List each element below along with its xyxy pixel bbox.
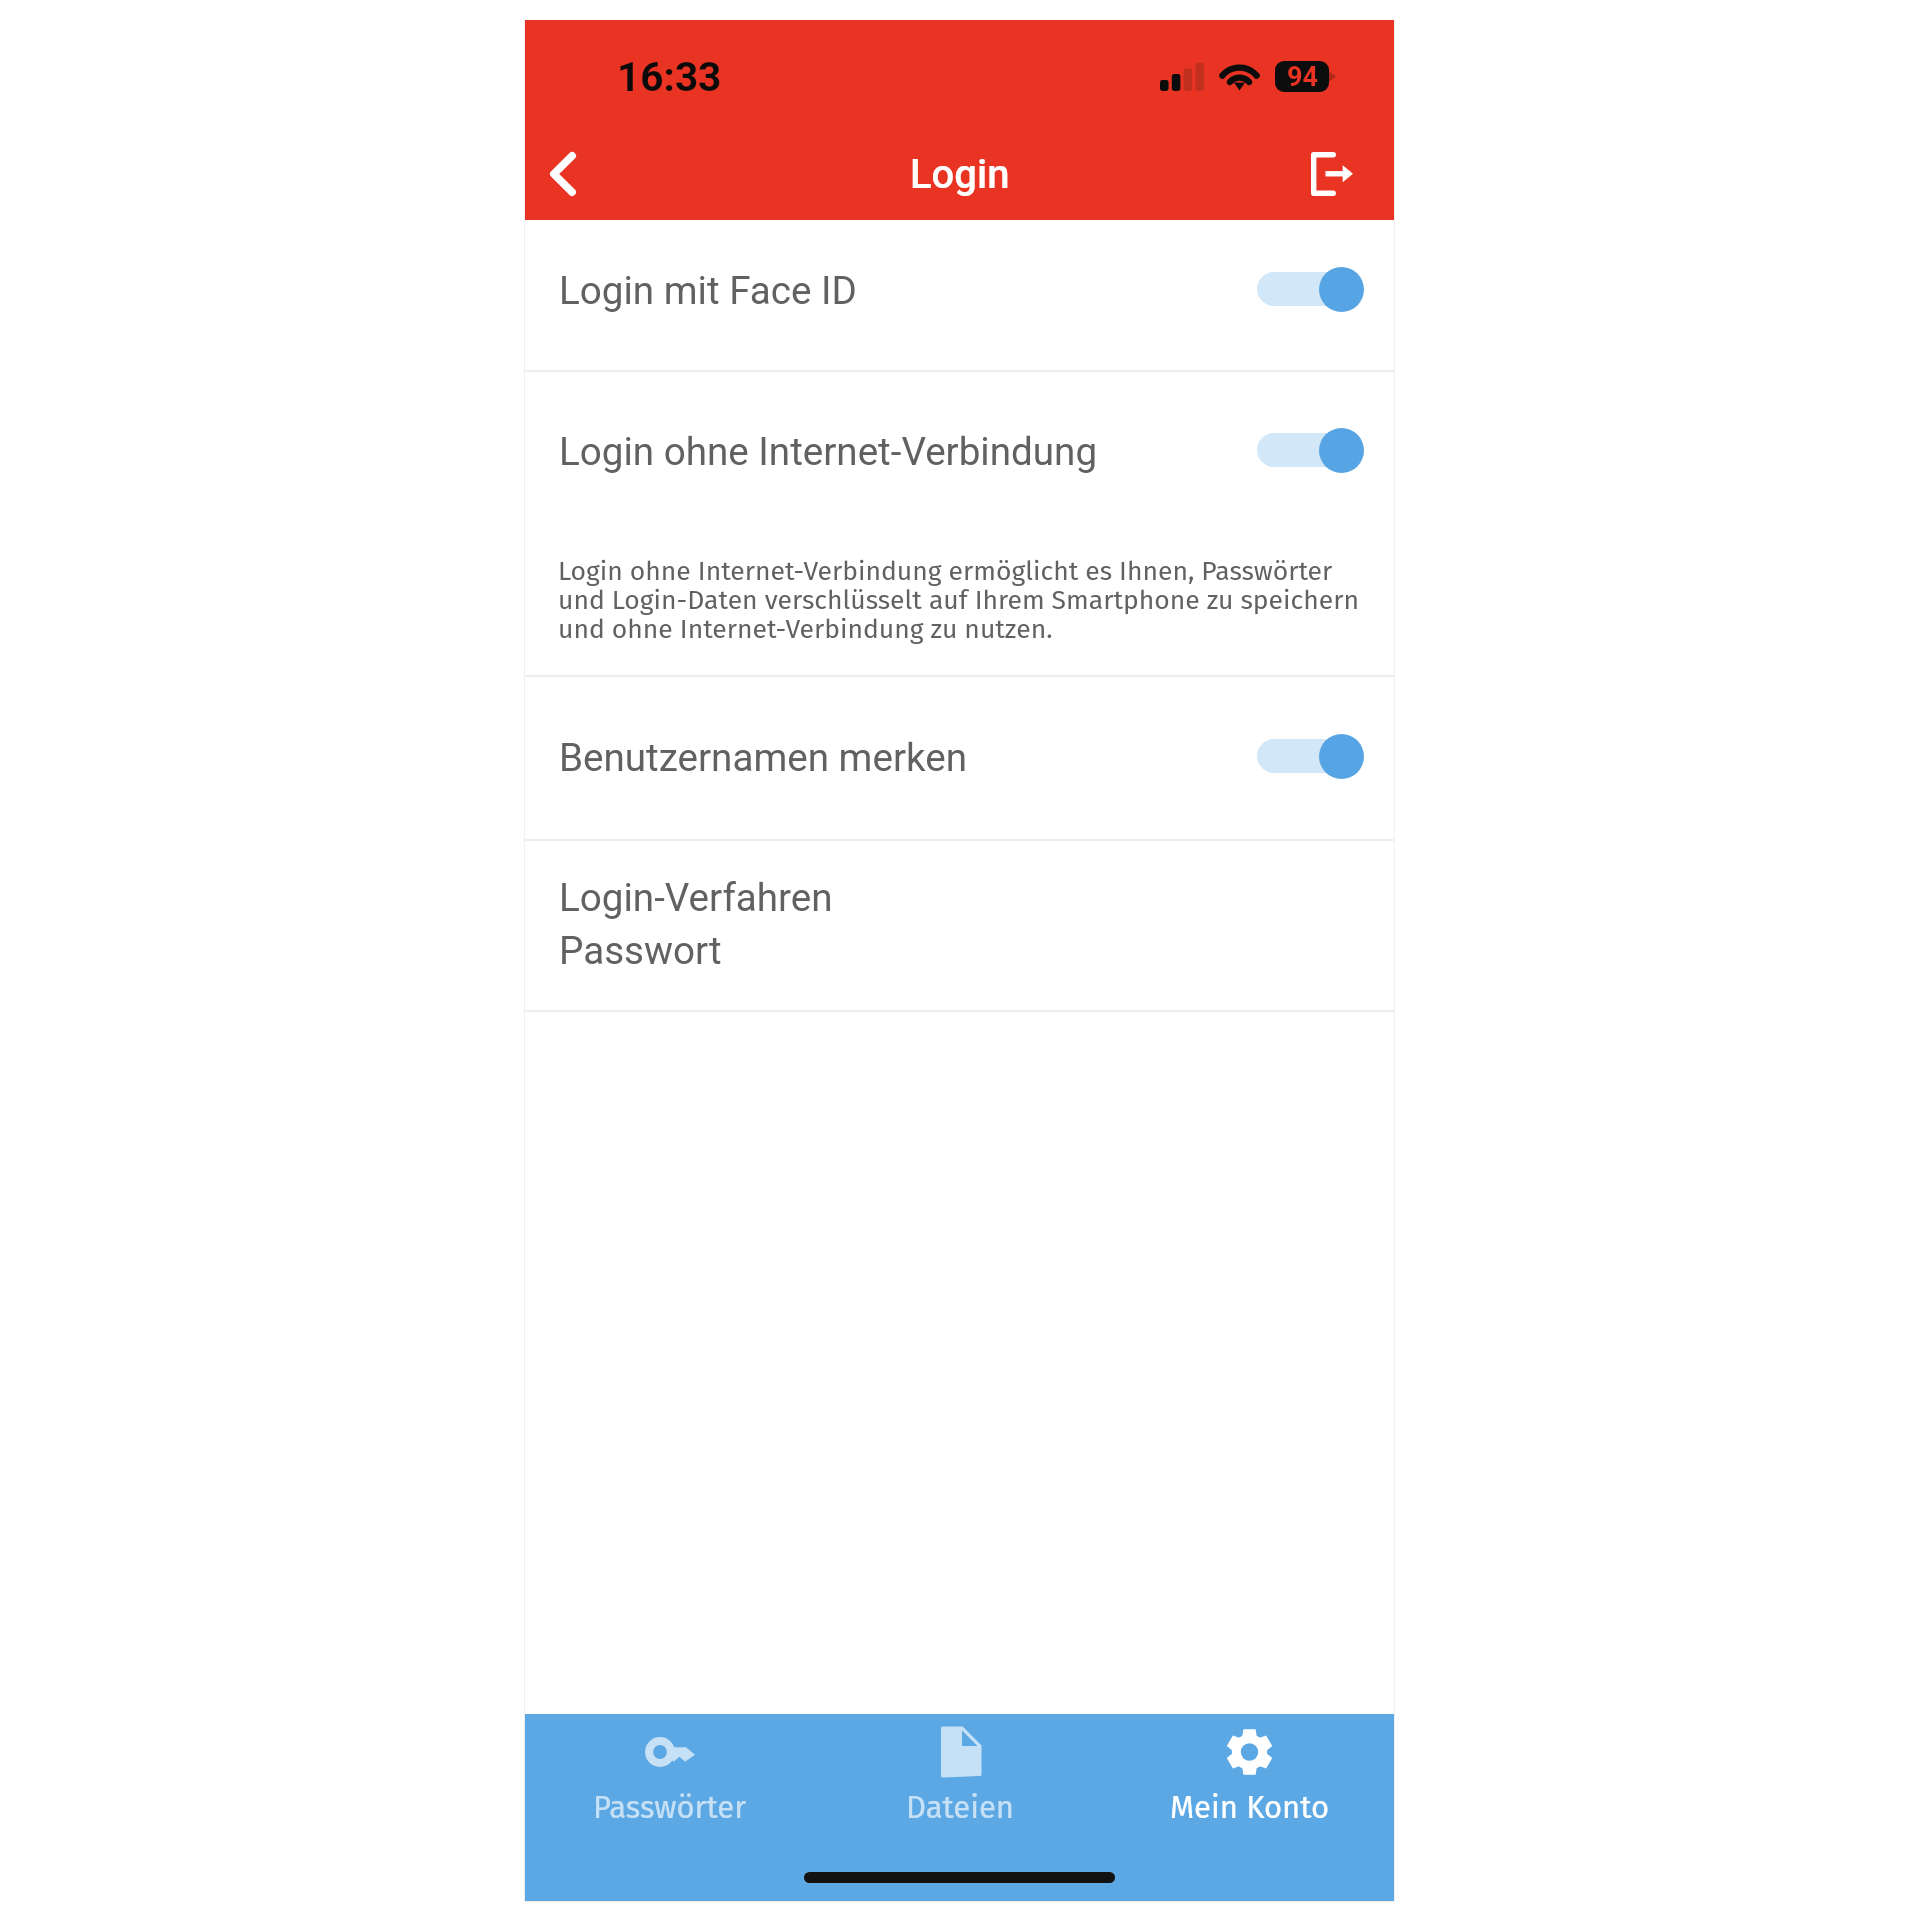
staticText: 16:33 [617, 53, 722, 100]
staticText: Login [910, 151, 1010, 198]
staticText: Passwörter [593, 1789, 747, 1826]
button[interactable]: Back [525, 112, 609, 220]
button[interactable]: Dateien [815, 1714, 1105, 1844]
staticText: 94 [1287, 61, 1318, 92]
staticText: Dateien [906, 1789, 1014, 1826]
staticText: Login-Verfahren [559, 875, 833, 920]
button[interactable]: Login mit Face ID [525, 220, 1394, 370]
button[interactable]: Login ohne Internet-Verbindung [525, 372, 1394, 675]
button[interactable]: Passwörter [525, 1714, 815, 1844]
button[interactable]: Login-Verfahren [525, 841, 1394, 1010]
staticText: Mein Konto [1170, 1789, 1330, 1826]
staticText: Login ohne Internet-Verbindung ermöglich… [558, 555, 1366, 645]
button[interactable]: Logout [1290, 112, 1394, 220]
staticText: Login mit Face ID [559, 268, 857, 313]
staticText: Login ohne Internet-Verbindung [559, 429, 1098, 474]
button[interactable]: Benutzernamen merken [525, 677, 1394, 839]
staticText: Passwort [559, 928, 722, 973]
button[interactable]: Mein Konto [1105, 1714, 1394, 1844]
staticText: Benutzernamen merken [559, 735, 967, 780]
